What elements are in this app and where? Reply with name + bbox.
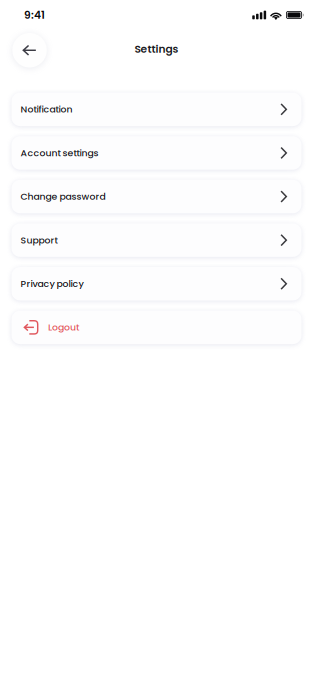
button[interactable]: Change password [11, 180, 301, 213]
button[interactable]: Account settings [11, 136, 301, 170]
staticText: Account settings [20, 146, 98, 159]
staticText: Settings [134, 41, 178, 56]
staticText: 9:41 [24, 7, 45, 22]
staticText: Privacy policy [20, 277, 83, 290]
staticText: Logout [48, 321, 79, 334]
button[interactable]: Privacy policy [11, 267, 301, 300]
button[interactable]: Logout [11, 311, 301, 344]
staticText: Change password [20, 190, 105, 203]
button[interactable]: Support [11, 223, 301, 257]
button[interactable]: Notification [11, 93, 301, 126]
staticText: Notification [20, 103, 72, 116]
button[interactable]: Back [12, 33, 47, 67]
staticText: Support [20, 234, 57, 247]
